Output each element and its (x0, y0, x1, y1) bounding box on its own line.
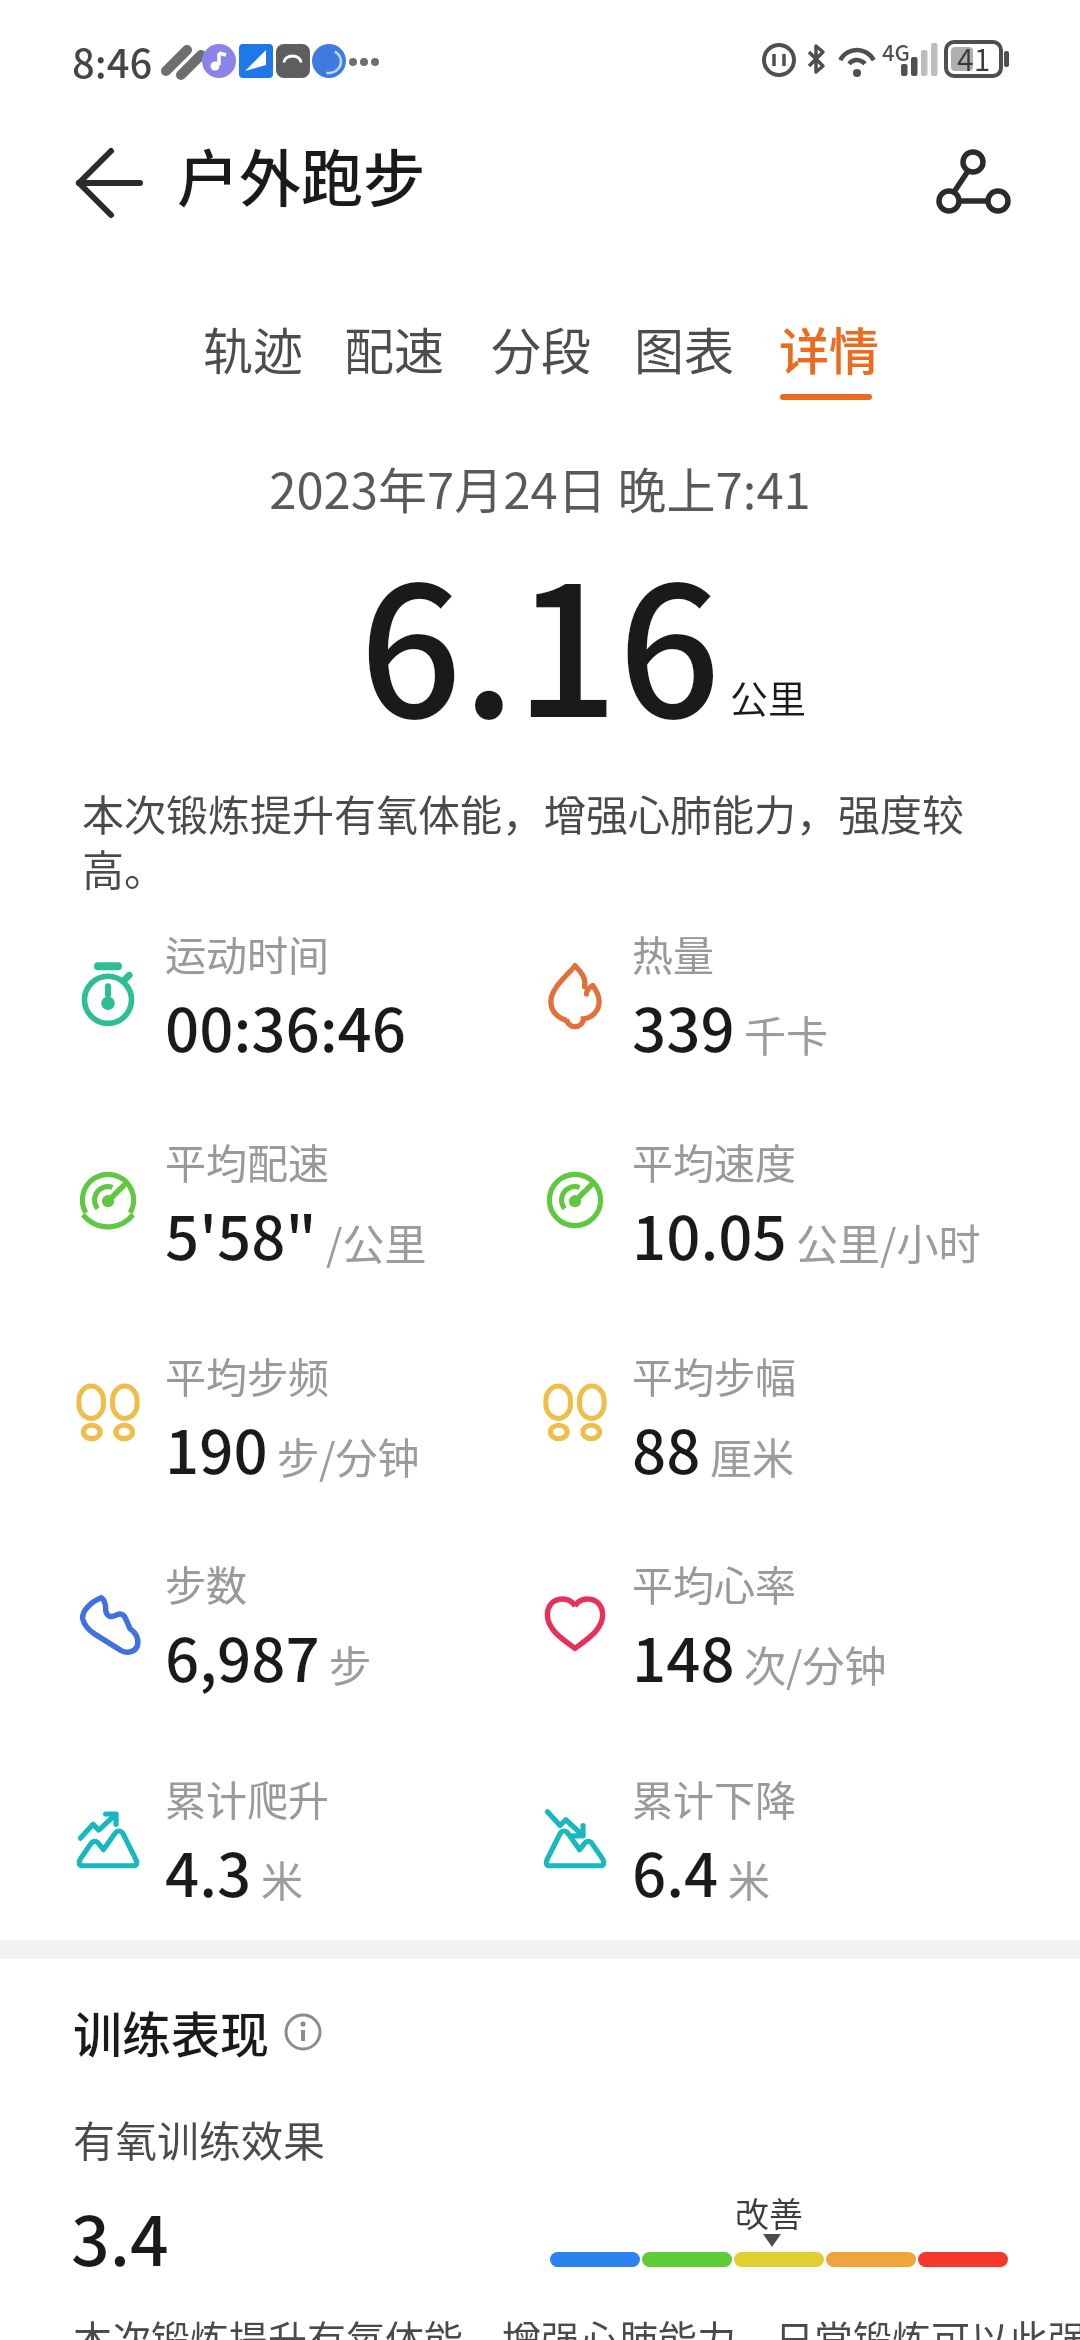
staticText: 148 (632, 1612, 735, 1699)
staticText: 米 (728, 1848, 771, 1909)
staticText: 2023年7月24日 晚上7:41 (0, 452, 1080, 523)
button[interactable]: 平均心率 (545, 1553, 985, 1693)
staticText: 户外跑步 (177, 130, 426, 220)
button[interactable]: 训练表现 (73, 1996, 324, 2067)
staticText: 运动时间 (165, 923, 329, 982)
button[interactable]: 平均速度 (545, 1131, 985, 1271)
staticText: 配速 (344, 312, 444, 384)
staticText: 轨迹 (203, 312, 303, 384)
staticText: 3.4 (71, 2187, 169, 2285)
staticText: 公里/小时 (796, 1211, 981, 1272)
staticText: 5'58" (165, 1190, 317, 1277)
staticText: 本次锻炼提升有氧体能，增强心肺能力，日常锻炼可以此强 (73, 2309, 1080, 2340)
button[interactable]: 分段 (471, 312, 611, 384)
staticText: 千卡 (744, 1003, 829, 1064)
button[interactable]: 累计爬升 (78, 1768, 518, 1908)
button[interactable] (925, 140, 1025, 230)
button[interactable]: 配速 (324, 312, 464, 384)
staticText: 本次锻炼提升有氧体能，增强心肺能力，强度较 高。 (82, 782, 965, 898)
button[interactable]: 详情 (759, 312, 899, 384)
staticText: 平均步幅 (632, 1345, 796, 1404)
staticText: 平均心率 (632, 1553, 796, 1612)
button[interactable]: 轨迹 (183, 312, 323, 384)
staticText: 厘米 (710, 1425, 795, 1486)
staticText: 88 (632, 1404, 701, 1491)
staticText: 详情 (779, 312, 879, 384)
button[interactable]: 平均步频 (78, 1345, 518, 1485)
staticText: 步 (329, 1633, 372, 1694)
staticText: 分段 (491, 312, 591, 384)
staticText: 累计爬升 (165, 1768, 329, 1827)
staticText: 190 (165, 1404, 268, 1491)
staticText: 图表 (634, 312, 734, 384)
button[interactable]: 运动时间 (78, 923, 518, 1063)
staticText: 热量 (632, 923, 714, 982)
staticText: 00:36:46 (165, 982, 406, 1069)
button[interactable] (60, 140, 160, 230)
staticText: 平均速度 (632, 1131, 796, 1190)
staticText: 平均步频 (165, 1345, 329, 1404)
staticText: 6.16 (0, 508, 1080, 769)
staticText: 步数 (165, 1553, 247, 1612)
staticText: 有氧训练效果 (73, 2108, 326, 2169)
staticText: 339 (632, 982, 735, 1069)
staticText: /公里 (326, 1211, 427, 1272)
staticText: 次/分钟 (744, 1633, 887, 1694)
staticText: 公里 (730, 669, 807, 724)
staticText: 4.3 (165, 1827, 252, 1914)
button[interactable]: 平均配速 (78, 1131, 518, 1271)
button[interactable]: 热量 (545, 923, 985, 1063)
staticText: 改善 (735, 2188, 803, 2237)
button[interactable]: 图表 (614, 312, 754, 384)
staticText: 平均配速 (165, 1131, 329, 1190)
staticText: 训练表现 (73, 1996, 270, 2067)
staticText: 6.4 (632, 1827, 719, 1914)
staticText: 41 (957, 36, 991, 79)
staticText: 步/分钟 (277, 1425, 420, 1486)
button[interactable]: 步数 (78, 1553, 518, 1693)
staticText: 累计下降 (632, 1768, 796, 1827)
staticText: 4G (882, 35, 910, 67)
staticText: 10.05 (632, 1190, 787, 1277)
staticText: 米 (261, 1848, 304, 1909)
button[interactable]: 累计下降 (545, 1768, 985, 1908)
button[interactable]: 平均步幅 (545, 1345, 985, 1485)
staticText: 6,987 (165, 1612, 320, 1699)
staticText: 8:46 (72, 32, 153, 90)
